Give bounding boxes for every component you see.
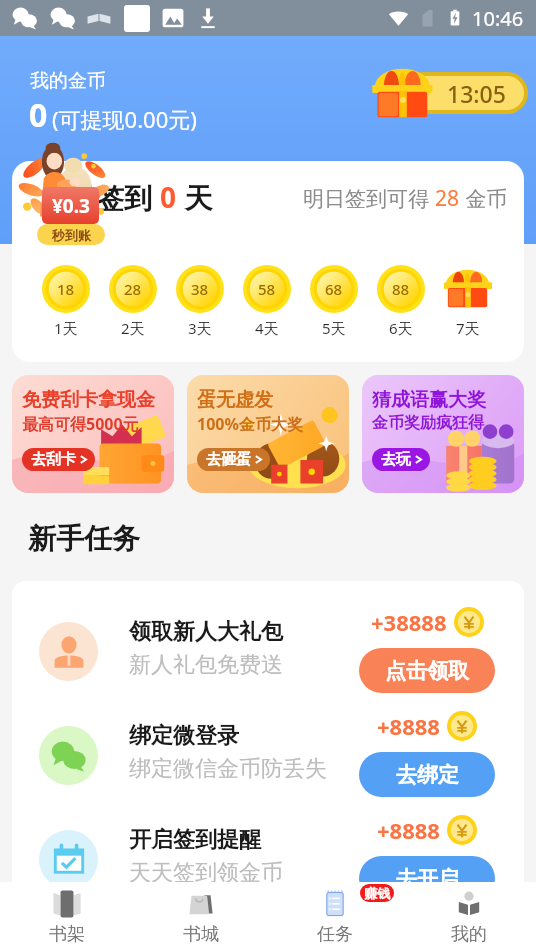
button[interactable]: 绑定微登录 (12, 685, 524, 789)
button[interactable]: 赚钱 (268, 882, 402, 952)
staticText: 天天签到领金币 (129, 859, 283, 887)
button[interactable]: 我的 (402, 882, 536, 952)
staticText: 任务 (317, 923, 353, 946)
staticText: 金币奖励疯狂得 (372, 413, 484, 433)
staticText: ¥0.3 (52, 193, 90, 219)
staticText: 3天 (188, 318, 212, 338)
staticText: 免费刮卡拿现金 (22, 388, 155, 412)
button[interactable]: 免费刮卡拿现金 (12, 375, 174, 493)
staticText: 点击领取 (385, 658, 469, 684)
staticText: 18 (57, 279, 75, 299)
staticText: 猜成语赢大奖 (372, 388, 486, 412)
staticText: 我的金币 (30, 69, 106, 93)
staticText: 最高可得5000元 (22, 413, 139, 435)
staticText: 金币 (460, 184, 508, 213)
staticText: 5天 (322, 318, 346, 338)
staticText: 去开启 (396, 866, 459, 892)
staticText: 38 (191, 279, 209, 299)
button[interactable]: 书架 (0, 882, 134, 952)
staticText: 新人礼包免费送 (129, 651, 283, 679)
staticText: 蛋无虚发 (197, 388, 273, 412)
button[interactable]: 去开启 (359, 856, 495, 901)
staticText: 58 (258, 279, 276, 299)
staticText: 已签到 (68, 178, 160, 216)
staticText: 去玩 (381, 450, 411, 469)
staticText: 天 (177, 178, 213, 216)
button[interactable]: 蛋无虚发 (187, 375, 349, 493)
staticText: 2天 (121, 318, 145, 338)
button[interactable]: 已签到 (12, 161, 524, 362)
staticText: 领取新人大礼包 (129, 618, 283, 646)
staticText: 开启签到提醒 (129, 826, 261, 854)
staticText: 绑定微信金币防丢失 (129, 755, 327, 783)
staticText: 0 (160, 178, 177, 216)
button[interactable]: 书城 (134, 882, 268, 952)
staticText: 28 (124, 279, 142, 299)
staticText: 4天 (255, 318, 279, 338)
staticText: 赚钱 (364, 885, 390, 901)
staticText: 去绑定 (396, 762, 459, 788)
button[interactable]: 领取新人大礼包 (12, 581, 524, 685)
staticText: 6天 (389, 318, 413, 338)
staticText: 13:05 (447, 78, 506, 109)
staticText: 书架 (49, 923, 85, 946)
staticText: 7天 (456, 318, 480, 338)
staticText: 0 (29, 93, 48, 137)
staticText: 10:46 (472, 5, 524, 32)
staticText: 1天 (54, 318, 78, 338)
staticText: 秒到账 (52, 227, 91, 243)
staticText: 88 (392, 279, 410, 299)
staticText: +38888 (371, 607, 447, 637)
button[interactable]: 开启签到提醒 (12, 789, 524, 893)
staticText: 68 (325, 279, 343, 299)
button[interactable]: Timer 13:05 (402, 72, 528, 114)
staticText: 100%金币大奖 (197, 413, 303, 435)
button[interactable]: 点击领取 (359, 648, 495, 693)
staticText: 我的 (451, 923, 487, 946)
staticText: 28 (435, 184, 460, 213)
staticText: 明日签到可得 (303, 184, 435, 213)
staticText: 去砸蛋 (206, 450, 251, 469)
button[interactable]: 猜成语赢大奖 (362, 375, 524, 493)
staticText: 书城 (183, 923, 219, 946)
staticText: 绑定微登录 (129, 722, 239, 750)
staticText: +8888 (377, 815, 440, 845)
staticText: (可提现0.00元) (52, 104, 197, 134)
button[interactable]: 去绑定 (359, 752, 495, 797)
staticText: 去刮卡 (31, 450, 76, 469)
staticText: +8888 (377, 711, 440, 741)
staticText: 新手任务 (28, 521, 140, 556)
